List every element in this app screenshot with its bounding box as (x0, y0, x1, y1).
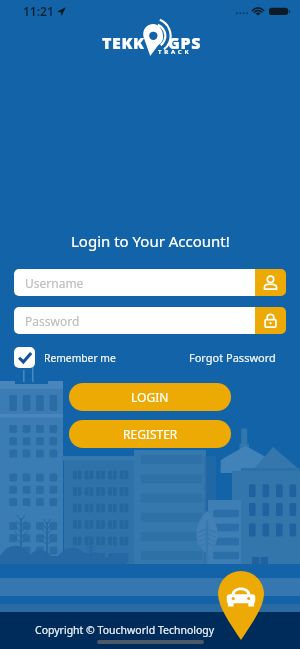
staticText: Username (25, 275, 84, 291)
staticText: Login to Your Account! (71, 231, 230, 251)
button[interactable]: Username (14, 269, 286, 296)
staticText: GPS (168, 32, 201, 54)
staticText: T R A C K (158, 48, 190, 56)
staticText: Copyright © Touchworld Technology (35, 623, 215, 637)
staticText: 11:21 (23, 3, 54, 19)
button[interactable]: LOGIN (69, 383, 231, 411)
button[interactable]: Forgot Password (189, 350, 300, 365)
staticText: TEKK (102, 32, 145, 54)
staticText: LOGIN (131, 389, 169, 405)
button[interactable]: REGISTER (69, 420, 231, 448)
staticText: Remember me (44, 351, 116, 365)
button[interactable]: Track vehicle (218, 571, 264, 640)
staticText: Password (25, 313, 80, 329)
button[interactable]: Password (14, 307, 286, 334)
button[interactable]: Remember me (14, 347, 116, 368)
staticText: REGISTER (123, 426, 178, 442)
